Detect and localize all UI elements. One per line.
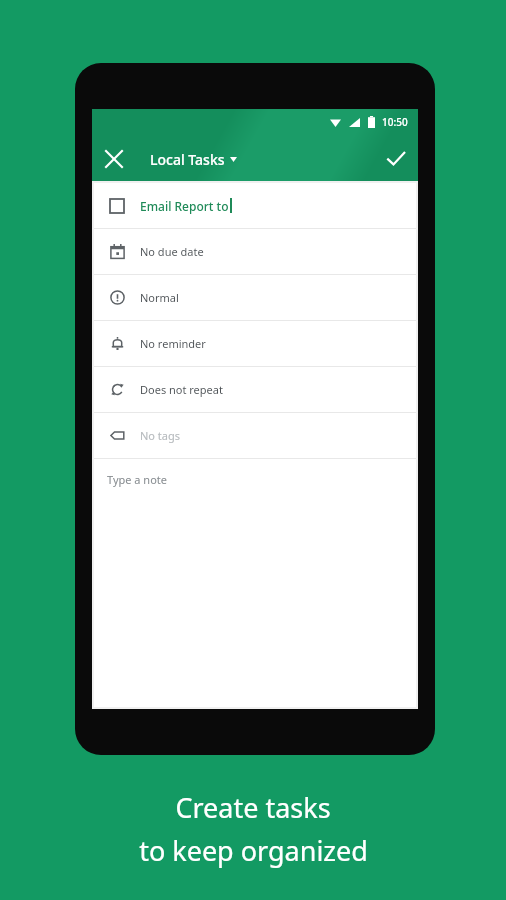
button[interactable]: Does not repeat <box>94 367 416 412</box>
staticText: Create tasks <box>175 789 331 826</box>
button[interactable]: No due date <box>94 229 416 274</box>
staticText: No reminder <box>140 336 206 351</box>
button[interactable]: Local Tasks <box>146 144 241 175</box>
button[interactable]: Type a note <box>94 459 416 707</box>
staticText: to keep organized <box>139 832 368 869</box>
button[interactable]: Normal <box>94 275 416 320</box>
staticText: Does not repeat <box>140 382 223 397</box>
staticText: 10:50 <box>382 115 408 129</box>
staticText: Email Report to <box>140 198 229 214</box>
staticText: No due date <box>140 244 204 259</box>
staticText: Normal <box>140 290 179 305</box>
button[interactable]: Close <box>92 137 136 181</box>
button[interactable]: No reminder <box>94 321 416 366</box>
staticText: Local Tasks <box>150 150 225 169</box>
staticText: Type a note <box>107 472 167 487</box>
button[interactable]: Save <box>374 137 418 181</box>
staticText: No tags <box>140 428 181 443</box>
button[interactable]: No tags <box>94 413 416 458</box>
button[interactable]: Email Report to <box>94 183 416 228</box>
